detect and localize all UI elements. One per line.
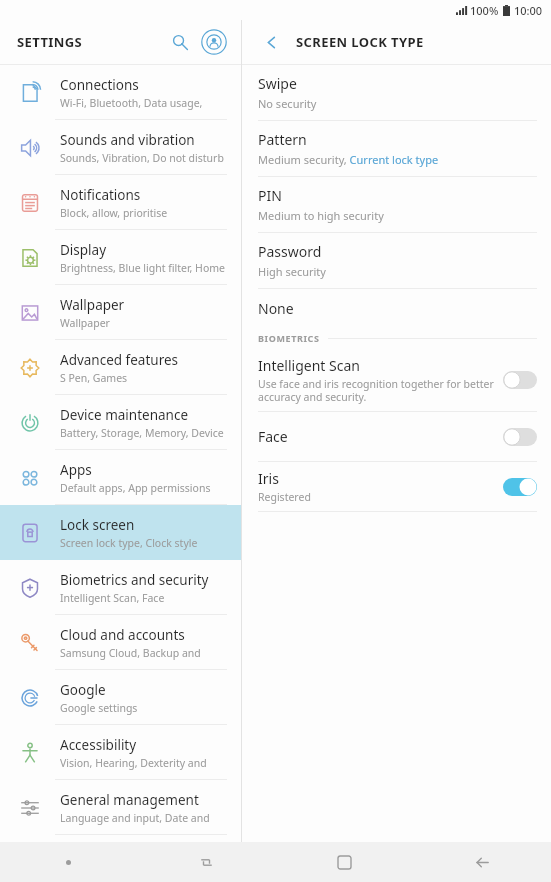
staticText: Lock screen: [60, 516, 135, 534]
staticText: Wi-Fi, Bluetooth, Data usage, Flight…: [60, 96, 233, 110]
staticText: S Pen, Games: [60, 371, 128, 385]
button[interactable]: Password: [242, 233, 551, 288]
staticText: 100%: [470, 3, 499, 18]
staticText: Samsung Cloud, Backup and restor…: [60, 646, 233, 660]
staticText: Sounds and vibration: [60, 131, 195, 149]
staticText: Medium to high security: [258, 208, 384, 223]
staticText: Wallpaper: [60, 296, 125, 314]
button[interactable]: Biometrics and security: [0, 560, 241, 615]
button[interactable]: None: [242, 289, 551, 327]
staticText: Cloud and accounts: [60, 626, 185, 644]
staticText: PIN: [258, 186, 282, 205]
button[interactable]: Advanced features: [0, 340, 241, 395]
button[interactable]: PIN: [242, 177, 551, 232]
button[interactable]: Switch: [137, 842, 275, 882]
staticText: Language and input, Date and time,…: [60, 811, 233, 825]
button[interactable]: Accessibility: [0, 725, 241, 780]
staticText: Notifications: [60, 186, 141, 204]
staticText: Connections: [60, 76, 139, 94]
button[interactable]: Home: [275, 842, 413, 882]
staticText: Wallpaper: [60, 316, 110, 330]
button[interactable]: Face: [242, 412, 551, 461]
staticText: Iris: [258, 469, 279, 488]
button[interactable]: Swipe: [242, 65, 551, 120]
button[interactable]: Account: [199, 27, 229, 57]
staticText: Google: [60, 681, 106, 699]
staticText: Swipe: [258, 74, 297, 93]
button[interactable]: Display: [0, 230, 241, 285]
staticText: Sounds, Vibration, Do not disturb: [60, 151, 224, 165]
staticText: No security: [258, 96, 317, 111]
staticText: Apps: [60, 461, 92, 479]
button[interactable]: Lock screen: [0, 505, 241, 560]
staticText: Default apps, App permissions: [60, 481, 211, 495]
button[interactable]: Connections: [0, 65, 241, 120]
button[interactable]: Device maintenance: [0, 395, 241, 450]
staticText: Use face and iris recognition together f…: [258, 377, 494, 404]
staticText: Intelligent Scan: [258, 356, 360, 375]
button[interactable]: Sounds and vibration: [0, 120, 241, 175]
button[interactable]: Pattern: [242, 121, 551, 176]
staticText: Medium security, Current lock type: [258, 152, 439, 167]
staticText: Password: [258, 242, 322, 261]
staticText: SETTINGS: [17, 33, 83, 51]
staticText: Brightness, Blue light filter, Home sc…: [60, 261, 233, 275]
staticText: Screen lock type, Clock style: [60, 536, 198, 550]
staticText: Google settings: [60, 701, 138, 715]
button[interactable]: Intelligent Scan toggle: [503, 371, 537, 389]
button[interactable]: Intelligent Scan: [242, 349, 551, 411]
button[interactable]: Iris toggle: [503, 478, 537, 496]
staticText: Pattern: [258, 130, 307, 149]
staticText: Registered: [258, 490, 311, 504]
staticText: Display: [60, 241, 107, 259]
button[interactable]: Cloud and accounts: [0, 615, 241, 670]
staticText: Device maintenance: [60, 406, 189, 424]
staticText: General management: [60, 791, 199, 809]
button[interactable]: Notifications: [0, 175, 241, 230]
button[interactable]: Iris: [242, 462, 551, 511]
staticText: Accessibility: [60, 736, 137, 754]
staticText: Battery, Storage, Memory, Device se…: [60, 426, 233, 440]
staticText: High security: [258, 264, 326, 279]
staticText: None: [258, 299, 294, 318]
button[interactable]: General management: [0, 780, 241, 835]
staticText: Vision, Hearing, Dexterity and intera…: [60, 756, 233, 770]
button[interactable]: Google: [0, 670, 241, 725]
button[interactable]: Back: [413, 842, 551, 882]
button[interactable]: Back: [256, 27, 286, 57]
button[interactable]: Wallpaper: [0, 285, 241, 340]
staticText: BIOMETRICS: [258, 332, 320, 344]
staticText: Block, allow, prioritise: [60, 206, 168, 220]
staticText: Biometrics and security: [60, 571, 209, 589]
button[interactable]: Face toggle: [503, 428, 537, 446]
staticText: Face: [258, 427, 288, 446]
button[interactable]: Assistant: [0, 842, 137, 882]
button[interactable]: Apps: [0, 450, 241, 505]
button[interactable]: Search: [165, 27, 195, 57]
staticText: SCREEN LOCK TYPE: [296, 33, 424, 51]
staticText: Advanced features: [60, 351, 179, 369]
staticText: 10:00: [514, 3, 543, 18]
staticText: Intelligent Scan, Face Recognition,…: [60, 591, 233, 605]
